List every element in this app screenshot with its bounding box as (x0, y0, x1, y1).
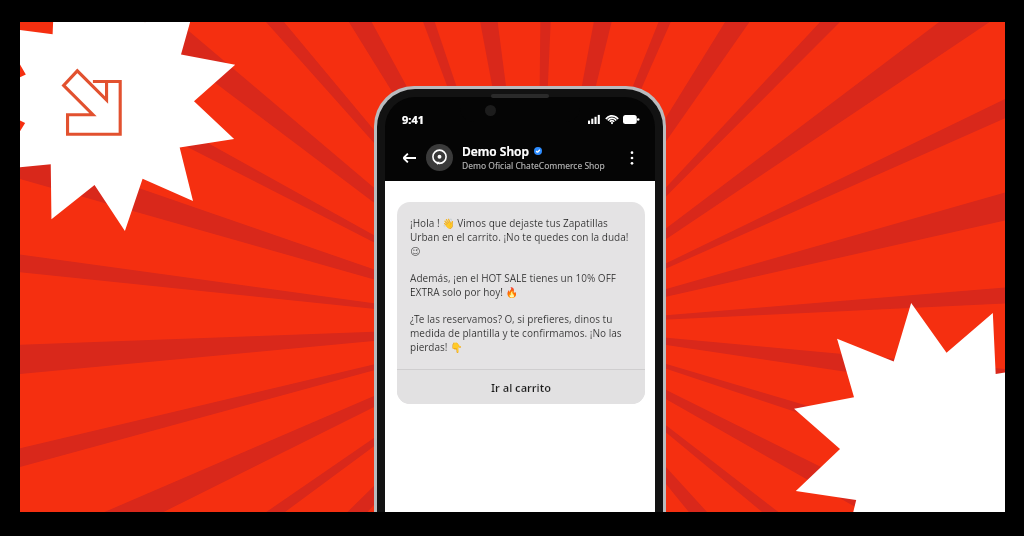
button[interactable]: Profile (426, 144, 453, 171)
other: Arrow (50, 64, 130, 142)
button[interactable]: Ir al carrito (397, 370, 645, 404)
staticText: Además, ¡en el HOT SALE tienes un 10% OF… (410, 271, 633, 299)
button[interactable]: More options (620, 146, 644, 170)
staticText: ¿Te las reservamos? O, si prefieres, din… (410, 312, 633, 354)
button[interactable]: Back (396, 145, 422, 171)
staticText: 9:41 (402, 112, 424, 127)
staticText: Demo Shop (462, 143, 530, 159)
staticText: ¡Hola ! 👋 Vimos que dejaste tus Zapatill… (410, 216, 633, 258)
staticText: Demo Oficial ChateCommerce Shop (462, 160, 605, 172)
staticText: Ir al carrito (491, 380, 551, 395)
